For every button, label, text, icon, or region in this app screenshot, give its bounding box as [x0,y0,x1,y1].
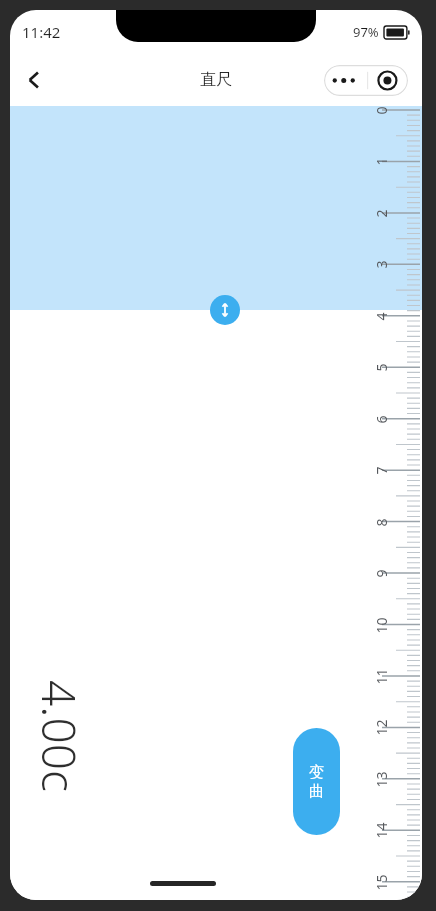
staticText: 9 [372,569,391,578]
button[interactable]: 变 [293,728,340,835]
staticText: 直尺 [200,70,232,90]
staticText: 11:42 [22,22,61,42]
staticText: 11 [372,668,391,685]
staticText: 8 [372,518,391,527]
staticText: 3 [372,260,391,269]
staticText: 97% [353,23,379,41]
button[interactable]: Back [10,56,58,104]
staticText: 5 [372,363,391,372]
staticText: 6 [372,415,391,424]
staticText: 变 [309,763,324,782]
staticText: 15 [372,874,391,891]
staticText: 4 [372,312,391,321]
button[interactable]: Drag to resize [210,295,240,325]
staticText: 2 [372,209,391,218]
staticText: 12 [372,719,391,736]
staticText: 1 [372,157,391,166]
staticText: 13 [372,771,391,788]
staticText: 14 [372,822,391,839]
button[interactable]: More and close [324,65,408,96]
staticText: 0 [372,106,391,115]
staticText: 7 [372,466,391,475]
staticText: 曲 [309,782,324,801]
staticText: 4.00cm [31,661,91,811]
staticText: 10 [372,617,391,634]
